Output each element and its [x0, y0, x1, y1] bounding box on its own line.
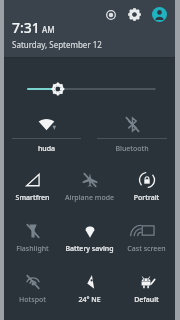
button[interactable]: huda: [4, 111, 89, 157]
staticText: Flashlight: [4, 244, 61, 254]
button[interactable]: Bluetooth: [89, 111, 175, 157]
staticText: AM: [42, 24, 55, 35]
button[interactable]: Flashlight: [4, 218, 61, 259]
staticText: Hotspot: [4, 295, 61, 305]
button[interactable]: Cast screen: [118, 218, 175, 259]
staticText: Airplane mode: [61, 193, 118, 203]
staticText: Bluetooth: [89, 144, 175, 154]
button[interactable]: Do not disturb: [103, 7, 118, 22]
button[interactable]: Brightness: [4, 79, 175, 99]
button[interactable]: Smartfren: [4, 167, 61, 208]
staticText: 7:31: [12, 18, 40, 37]
button[interactable]: Portrait: [118, 167, 175, 208]
button[interactable]: Settings: [127, 7, 142, 22]
staticText: Portrait: [118, 193, 175, 203]
staticText: Cast screen: [118, 244, 175, 254]
button[interactable]: User account: [151, 6, 167, 22]
staticText: 24° NE: [61, 295, 118, 305]
button[interactable]: Airplane mode: [61, 167, 118, 208]
staticText: Smartfren: [4, 193, 61, 203]
button[interactable]: Default: [118, 269, 175, 310]
button[interactable]: Hotspot: [4, 269, 61, 310]
staticText: Saturday, September 12: [12, 39, 102, 50]
staticText: huda: [4, 144, 89, 154]
staticText: Battery saving: [61, 244, 118, 254]
button[interactable]: 24° NE: [61, 269, 118, 310]
staticText: Default: [118, 295, 175, 305]
button[interactable]: Battery saving: [61, 218, 118, 259]
